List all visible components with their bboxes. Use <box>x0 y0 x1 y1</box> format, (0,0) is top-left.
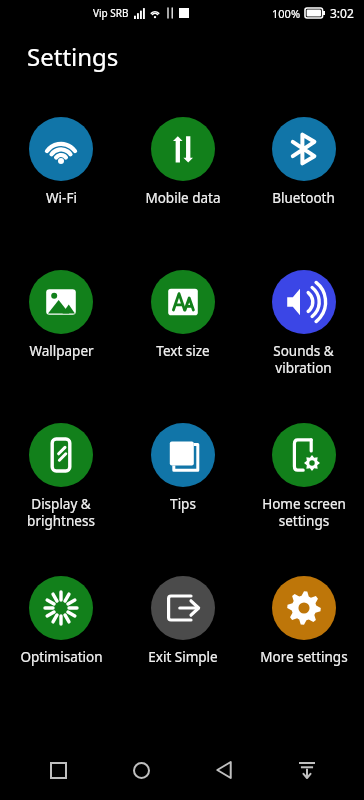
button[interactable]: Exit Simple <box>122 576 243 666</box>
staticText: Mobile data <box>145 189 221 207</box>
staticText: 100% <box>272 6 301 21</box>
button[interactable]: Tips <box>122 423 243 513</box>
staticText: Settings <box>27 40 119 73</box>
staticText: 3:02 <box>330 5 354 21</box>
staticText: Text size <box>156 342 210 360</box>
button[interactable]: Bluetooth <box>243 117 364 207</box>
button[interactable]: Wallpaper <box>0 270 122 360</box>
staticText: Wi-Fi <box>46 189 77 207</box>
button[interactable]: Mobile data <box>122 117 243 207</box>
button[interactable]: Text size <box>122 270 243 360</box>
staticText: Home screen settings <box>262 495 346 530</box>
button[interactable]: More settings <box>243 576 364 666</box>
button[interactable]: Home <box>119 748 163 792</box>
button[interactable]: Home screen settings <box>243 423 364 530</box>
staticText: Vip SRB <box>93 6 129 20</box>
staticText: Bluetooth <box>272 189 335 207</box>
staticText: Tips <box>170 495 196 513</box>
staticText: Display & brightness <box>27 495 95 530</box>
button[interactable]: Sounds & vibration <box>243 270 364 377</box>
button[interactable]: Back <box>202 748 246 792</box>
staticText: Optimisation <box>20 648 103 666</box>
button[interactable]: Display & brightness <box>0 423 122 530</box>
staticText: Sounds & vibration <box>273 342 334 377</box>
staticText: More settings <box>260 648 348 666</box>
staticText: Exit Simple <box>148 648 218 666</box>
button[interactable]: Wi-Fi <box>0 117 122 207</box>
staticText: Wallpaper <box>29 342 94 360</box>
button[interactable]: Recents <box>36 748 80 792</box>
button[interactable]: Optimisation <box>0 576 122 666</box>
button[interactable]: Hide navigation bar <box>285 748 329 792</box>
